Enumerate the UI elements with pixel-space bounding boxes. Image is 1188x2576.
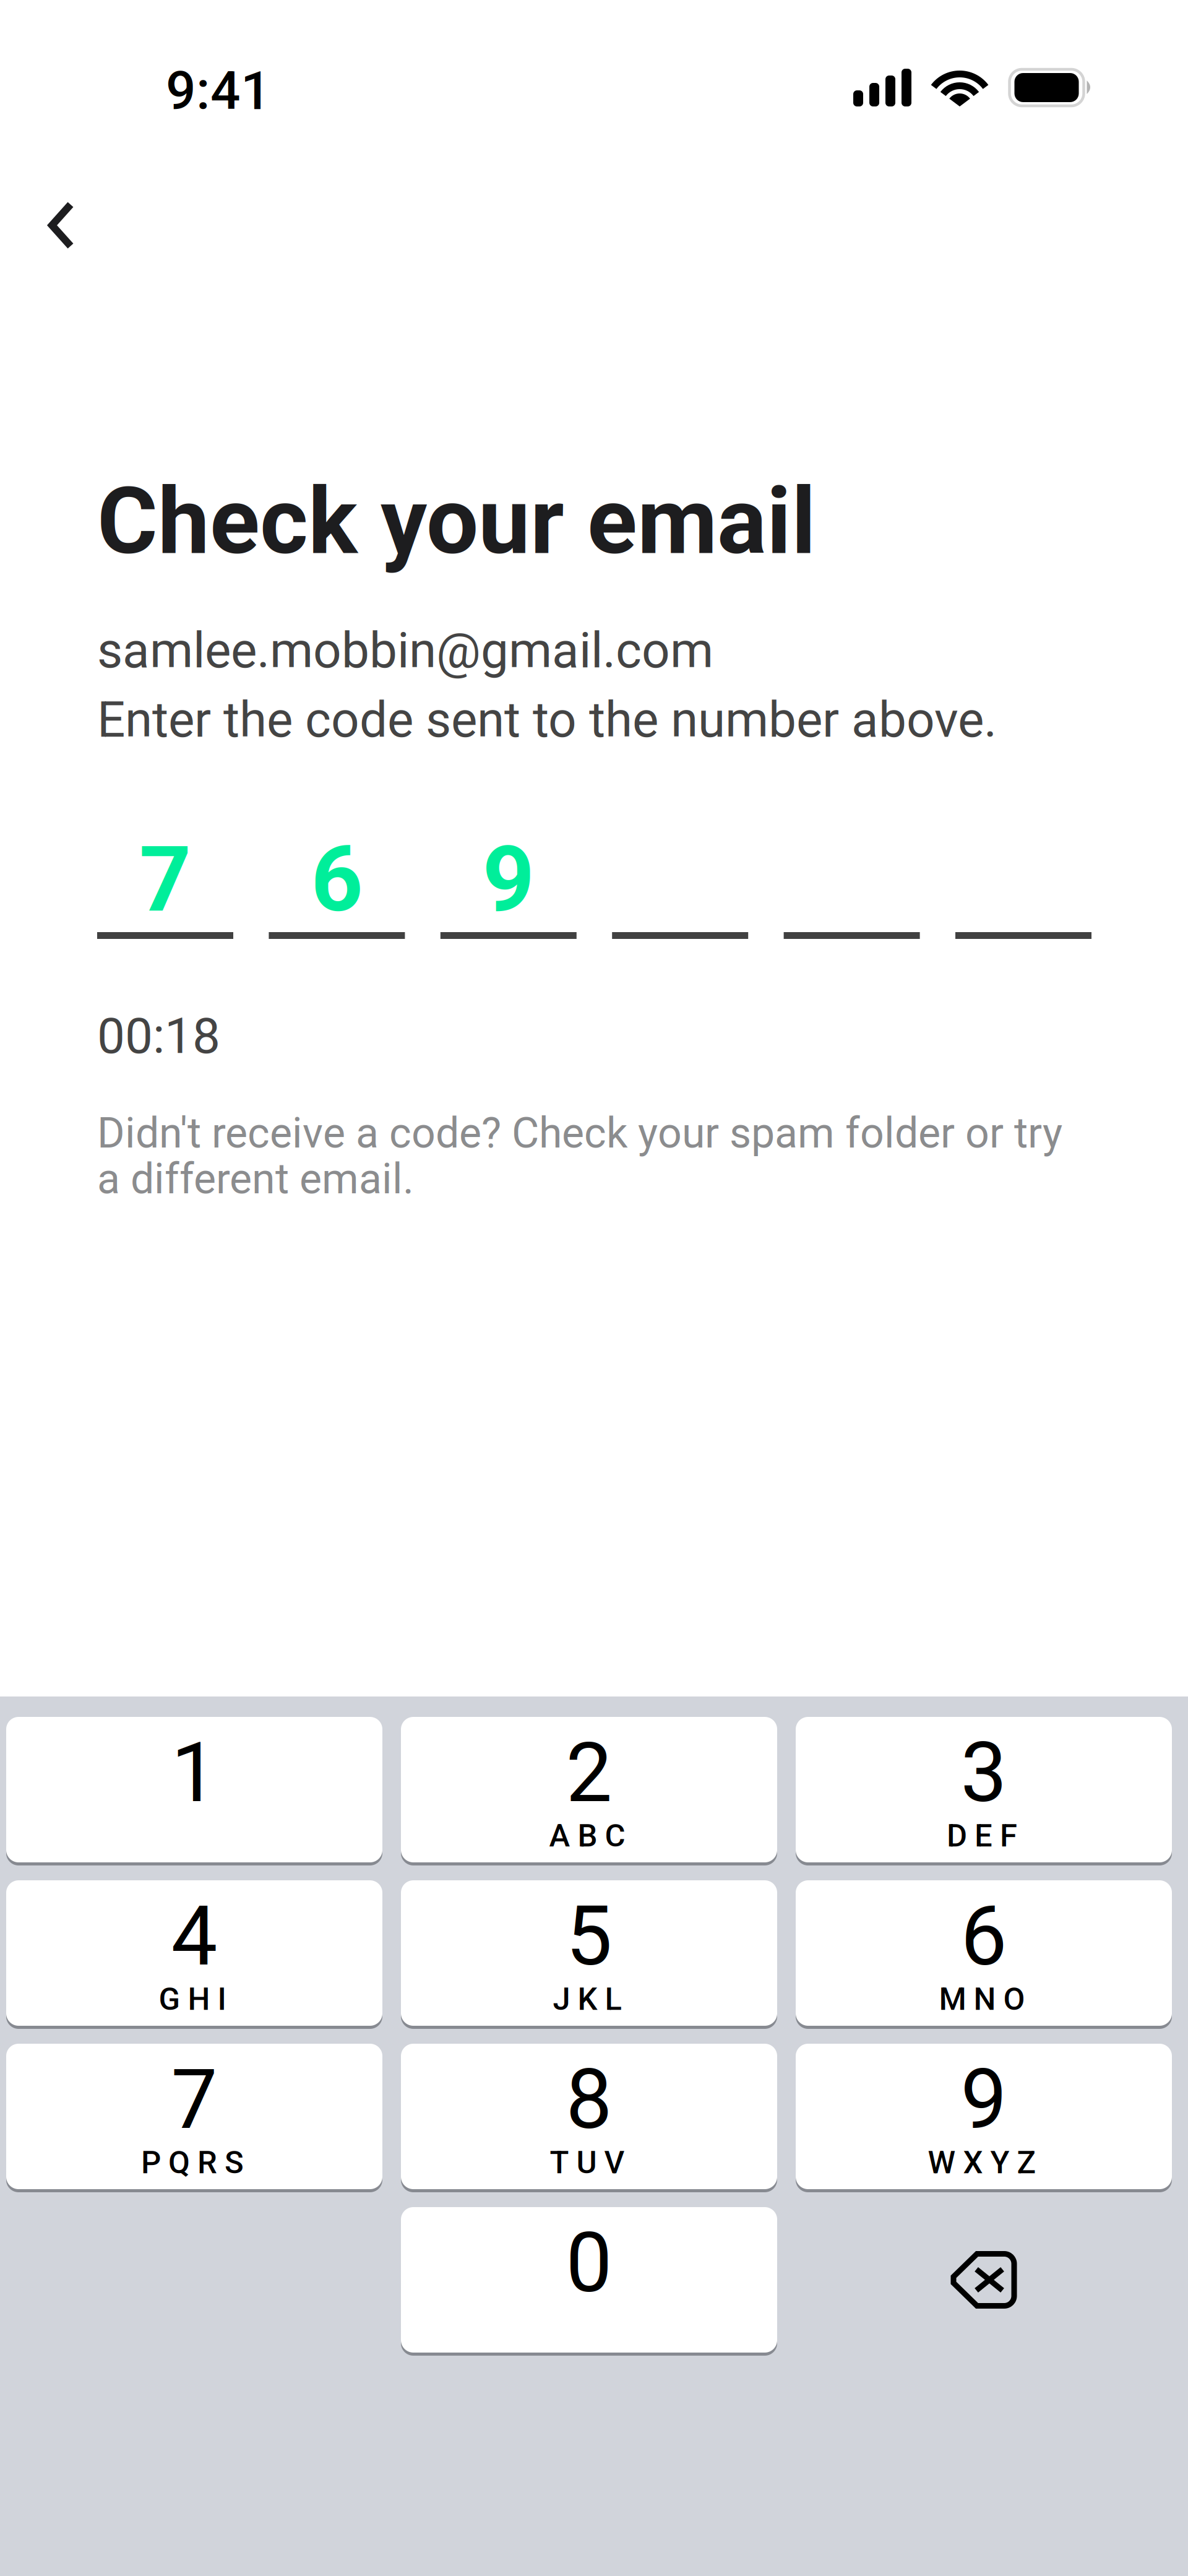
staticText: 5 (566, 1888, 612, 1985)
staticText: 9:41 (166, 60, 271, 122)
button[interactable]: 1 (6, 1717, 382, 1862)
button[interactable]: 5 (401, 1880, 777, 2026)
staticText: DEF (947, 1817, 1017, 1854)
staticText: 6 (311, 826, 363, 933)
button[interactable]: 0 (401, 2207, 777, 2353)
staticText: 4 (171, 1888, 217, 1985)
staticText: PQRS (141, 2144, 244, 2181)
staticText: 6 (961, 1888, 1007, 1985)
staticText: WXYZ (928, 2144, 1036, 2181)
button[interactable]: 7 (6, 2044, 382, 2189)
staticText: 1 (171, 1725, 217, 1821)
staticText: 7 (139, 826, 191, 933)
staticText: 2 (566, 1725, 612, 1821)
staticText: 00:18 (97, 1007, 220, 1065)
button[interactable]: 8 (401, 2044, 777, 2189)
staticText: 7 (171, 2051, 217, 2148)
button[interactable]: 4 (6, 1880, 382, 2026)
button[interactable]: 6 (796, 1880, 1172, 2026)
staticText: JKL (553, 1981, 622, 2018)
staticText: 3 (961, 1725, 1007, 1821)
staticText: MNO (939, 1981, 1025, 2018)
staticText: Enter the code sent to the number above. (97, 691, 997, 749)
staticText: a different email. (97, 1154, 414, 1204)
staticText: GHI (159, 1981, 226, 2018)
staticText: Didn't receive a code? Check your spam f… (97, 1109, 1062, 1158)
staticText: ABC (549, 1817, 625, 1854)
button[interactable]: 9 (796, 2044, 1172, 2189)
staticText: Check your email (97, 467, 816, 576)
staticText: 0 (566, 2215, 612, 2311)
button[interactable]: Delete (796, 2207, 1172, 2353)
staticText: 8 (566, 2051, 612, 2148)
button[interactable]: Verification code (97, 825, 1091, 939)
staticText: TUV (550, 2144, 625, 2181)
button[interactable]: Back (16, 182, 104, 269)
button[interactable]: 3 (796, 1717, 1172, 1862)
staticText: samlee.mobbin@gmail.com (97, 621, 713, 679)
button[interactable]: 2 (401, 1717, 777, 1862)
staticText: 9 (961, 2051, 1007, 2148)
staticText: 9 (483, 826, 534, 933)
